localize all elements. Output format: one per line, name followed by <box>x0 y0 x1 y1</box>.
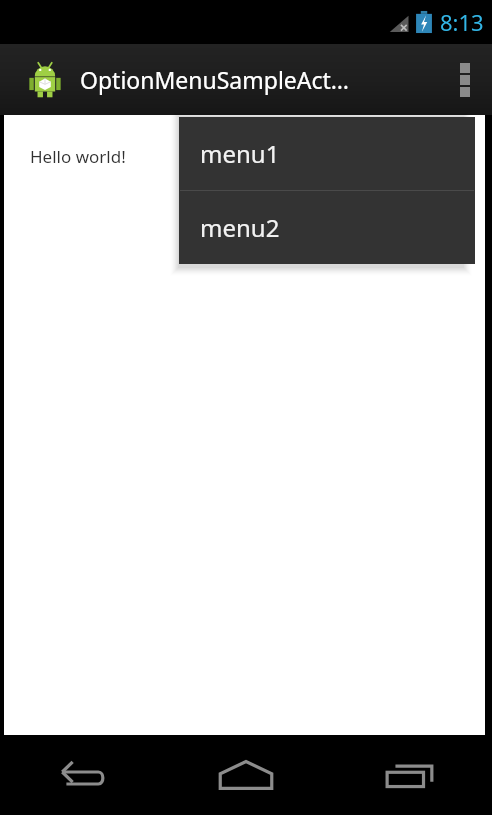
staticText: Hello world! <box>30 145 126 168</box>
button[interactable]: More options <box>438 44 492 115</box>
staticText: menu1 <box>200 137 280 170</box>
staticText: menu2 <box>200 211 280 244</box>
button[interactable]: menu2 <box>179 191 475 264</box>
button[interactable]: Home <box>164 735 328 815</box>
staticText: 8:13 <box>440 7 484 37</box>
button[interactable]: Recent apps <box>328 735 492 815</box>
button[interactable]: menu1 <box>179 117 475 190</box>
button[interactable]: Back <box>0 735 164 815</box>
staticText: OptionMenuSampleAct… <box>80 64 438 95</box>
